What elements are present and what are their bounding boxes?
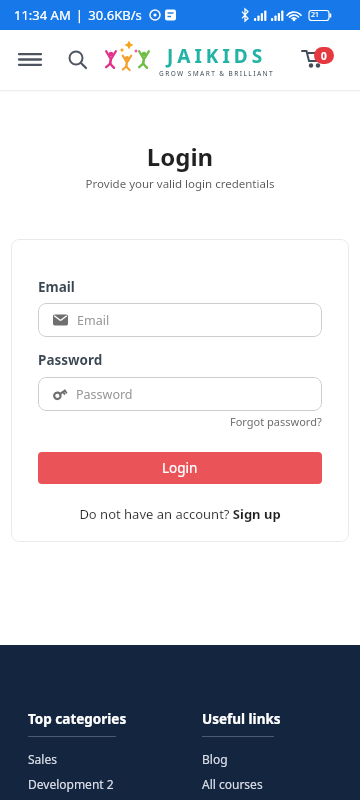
button[interactable]: Password: [38, 377, 322, 411]
button[interactable]: [12, 42, 48, 78]
staticText: Login: [0, 140, 360, 173]
staticText: Password: [76, 386, 133, 403]
staticText: Login: [162, 459, 198, 477]
staticText: GROW SMART & BRILLIANT: [159, 69, 275, 78]
button[interactable]: Sales: [28, 751, 57, 767]
button[interactable]: All courses: [202, 776, 263, 792]
button[interactable]: Development 2: [28, 776, 114, 792]
button[interactable]: 0: [298, 41, 336, 79]
staticText: Top categories: [28, 710, 127, 728]
staticText: 11:34 AM ❘ 30.6KB/s: [14, 6, 142, 24]
button[interactable]: Blog: [202, 751, 228, 767]
button[interactable]: [60, 42, 96, 78]
button[interactable]: Email: [38, 303, 322, 337]
staticText: 21: [311, 10, 320, 20]
button[interactable]: Forgot password?: [230, 414, 322, 429]
staticText: Provide your valid login credentials: [0, 176, 360, 192]
staticText: Useful links: [202, 710, 281, 728]
staticText: JAIKIDS: [167, 43, 267, 69]
staticText: 0: [321, 49, 327, 63]
button[interactable]: Do not have an account? Sign up: [38, 505, 322, 523]
staticText: Email: [38, 278, 75, 296]
staticText: Password: [38, 351, 103, 369]
button[interactable]: JAIKIDS: [102, 40, 275, 80]
button[interactable]: Login: [38, 452, 322, 484]
staticText: Email: [77, 312, 110, 329]
